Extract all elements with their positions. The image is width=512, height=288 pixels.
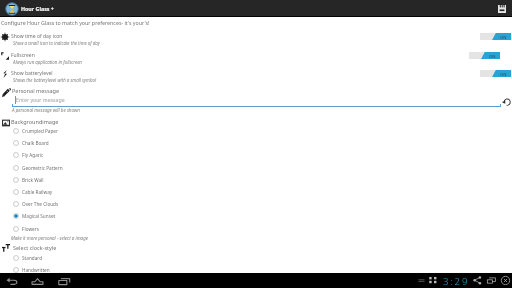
- staticText: Chalk Board: [22, 140, 49, 146]
- staticText: Shows the batterylevel with a small symb…: [13, 77, 97, 83]
- staticText: Hour Glass +: [21, 5, 54, 12]
- button[interactable]: Share: [472, 275, 483, 286]
- button[interactable]: Back: [6, 275, 19, 288]
- button[interactable]: Toggle Show batterylevel: [480, 70, 511, 77]
- staticText: Show batterylevel: [11, 70, 53, 77]
- button[interactable]: Handwritten: [10, 264, 90, 276]
- staticText: Handwritten: [22, 267, 50, 273]
- button[interactable]: App icon: [5, 2, 19, 16]
- staticText: Crumpled Paper: [22, 128, 58, 134]
- staticText: Personal message: [12, 87, 60, 94]
- button[interactable]: Crumpled Paper: [10, 125, 90, 137]
- staticText: Brick Wall: [22, 177, 44, 183]
- staticText: Fly Agaric: [22, 152, 44, 158]
- button[interactable]: Brick Wall: [10, 174, 90, 186]
- staticText: A personal message will be shown: [12, 107, 80, 113]
- staticText: ON: [500, 35, 507, 41]
- button[interactable]: Close: [500, 275, 511, 286]
- button[interactable]: Show time of day icon: [0, 31, 512, 49]
- staticText: Backgroundimage: [11, 118, 59, 125]
- button[interactable]: Fly Agaric: [10, 149, 90, 161]
- staticText: Show time of day icon: [11, 33, 63, 40]
- button[interactable]: Save: [494, 1, 507, 14]
- staticText: Geometric Pattern: [22, 165, 63, 171]
- staticText: Show a small icon to indicate the time o…: [13, 40, 100, 46]
- button[interactable]: Standard: [10, 252, 90, 264]
- staticText: 3:29: [443, 275, 470, 288]
- staticText: Make it more personal - select a image: [11, 235, 89, 241]
- button[interactable]: Toggle Fullscreen: [469, 52, 500, 59]
- button[interactable]: Geometric Pattern: [10, 162, 90, 174]
- button[interactable]: Fullscreen: [0, 50, 512, 68]
- button[interactable]: Magical Sunset: [10, 210, 90, 222]
- button[interactable]: Over The Clouds: [10, 198, 90, 210]
- staticText: Fullscreen: [11, 52, 35, 59]
- button[interactable]: Recents: [58, 275, 71, 288]
- button[interactable]: Toggle Show time of day icon: [480, 33, 511, 40]
- button[interactable]: Chalk Board: [10, 137, 90, 149]
- staticText: Standard: [22, 255, 43, 261]
- staticText: Configure Hour Glass to match your prefe…: [1, 19, 150, 26]
- button[interactable]: Screenshot: [486, 275, 497, 286]
- staticText: Flowers: [22, 226, 39, 232]
- button[interactable]: [12, 95, 494, 106]
- button[interactable]: Home: [31, 275, 44, 288]
- staticText: Always run application in fullscreen: [13, 59, 82, 65]
- staticText: Over The Clouds: [22, 201, 59, 207]
- staticText: Select clock-style: [13, 244, 57, 251]
- staticText: ON: [500, 72, 507, 78]
- staticText: Magical Sunset: [22, 213, 56, 219]
- button[interactable]: Show batterylevel: [0, 68, 512, 86]
- staticText: Enter your message: [16, 96, 65, 103]
- button[interactable]: Flowers: [10, 223, 90, 235]
- staticText: ON: [489, 54, 496, 60]
- button[interactable]: Reset message: [500, 96, 512, 108]
- staticText: Cable Railway: [22, 189, 53, 195]
- button[interactable]: Cable Railway: [10, 186, 90, 198]
